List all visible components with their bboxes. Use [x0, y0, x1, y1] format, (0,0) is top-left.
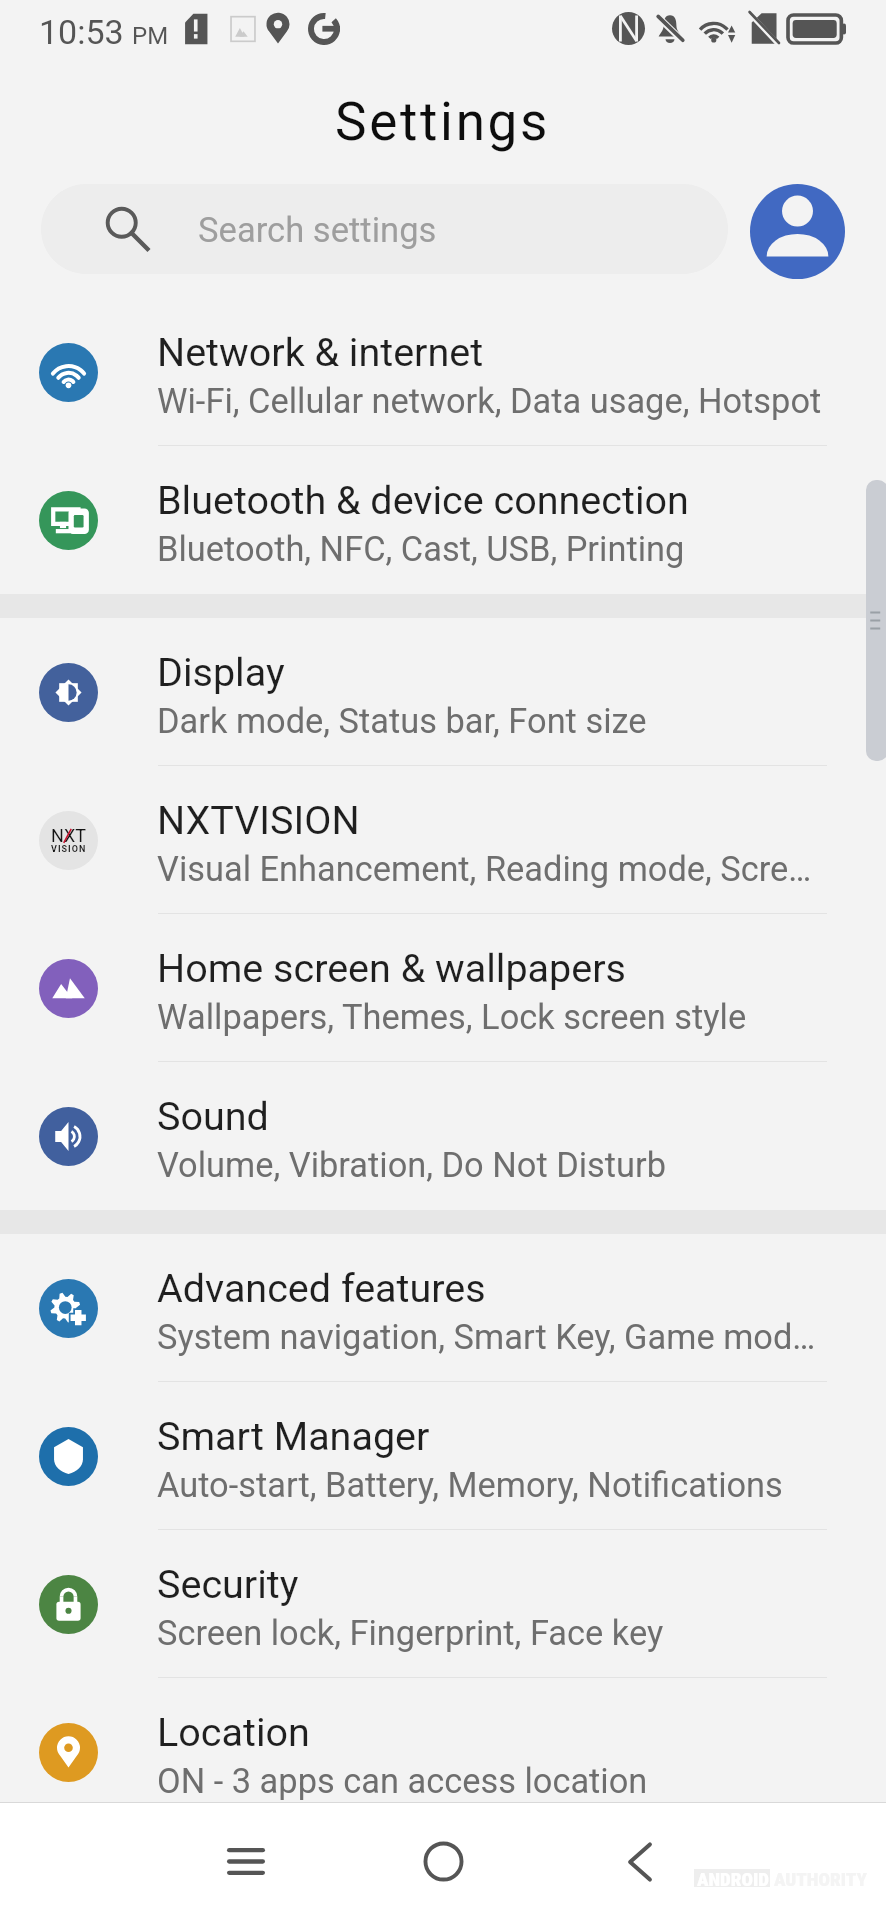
staticText: System navigation, Smart Key, Game mod… — [157, 1317, 816, 1357]
staticText: Location — [157, 1709, 310, 1755]
button[interactable]: Back — [542, 1803, 738, 1920]
staticText: Volume, Vibration, Do Not Disturb — [157, 1145, 667, 1185]
button[interactable]: Search settings — [41, 184, 728, 274]
staticText: Bluetooth & device connection — [157, 477, 689, 523]
staticText: Screen lock, Fingerprint, Face key — [157, 1613, 664, 1653]
staticText: ON - 3 apps can access location — [157, 1761, 648, 1801]
staticText: Advanced features — [157, 1265, 486, 1311]
button[interactable]: Network & internet — [0, 298, 886, 446]
staticText: Sound — [157, 1093, 269, 1139]
staticText: Auto-start, Battery, Memory, Notificatio… — [157, 1465, 783, 1505]
staticText: Bluetooth, NFC, Cast, USB, Printing — [157, 529, 685, 569]
button[interactable]: Home — [345, 1803, 541, 1920]
button[interactable]: Account — [750, 184, 845, 279]
staticText: Home screen & wallpapers — [157, 945, 626, 991]
button[interactable]: Smart Manager — [0, 1382, 886, 1530]
staticText: Wallpapers, Themes, Lock screen style — [157, 997, 747, 1037]
staticText: PM — [132, 22, 169, 50]
button[interactable]: Location — [0, 1678, 886, 1826]
staticText: Visual Enhancement, Reading mode, Scre… — [157, 849, 812, 889]
staticText: Wi-Fi, Cellular network, Data usage, Hot… — [157, 381, 822, 421]
button[interactable]: Advanced features — [0, 1234, 886, 1382]
staticText: VISION — [51, 844, 87, 855]
staticText: NXTVISION — [157, 797, 360, 843]
staticText: Security — [157, 1561, 299, 1607]
button[interactable]: Bluetooth & device connection — [0, 446, 886, 594]
button[interactable]: Home screen & wallpapers — [0, 914, 886, 1062]
staticText: Smart Manager — [157, 1413, 430, 1459]
staticText: Search settings — [198, 210, 437, 251]
staticText: 10:53 — [39, 12, 124, 52]
button[interactable]: Display — [0, 618, 886, 766]
staticText: AUTHORITY — [774, 1868, 867, 1890]
staticText: Display — [157, 649, 285, 695]
button[interactable]: NXT — [0, 766, 886, 914]
button[interactable]: Sound — [0, 1062, 886, 1210]
staticText: Settings — [335, 91, 551, 153]
button[interactable]: Recent apps — [148, 1803, 344, 1920]
staticText: NXT — [51, 825, 87, 846]
button[interactable]: Security — [0, 1530, 886, 1678]
staticText: ANDROID — [697, 1868, 769, 1890]
staticText: Network & internet — [157, 329, 484, 375]
staticText: Dark mode, Status bar, Font size — [157, 701, 647, 741]
